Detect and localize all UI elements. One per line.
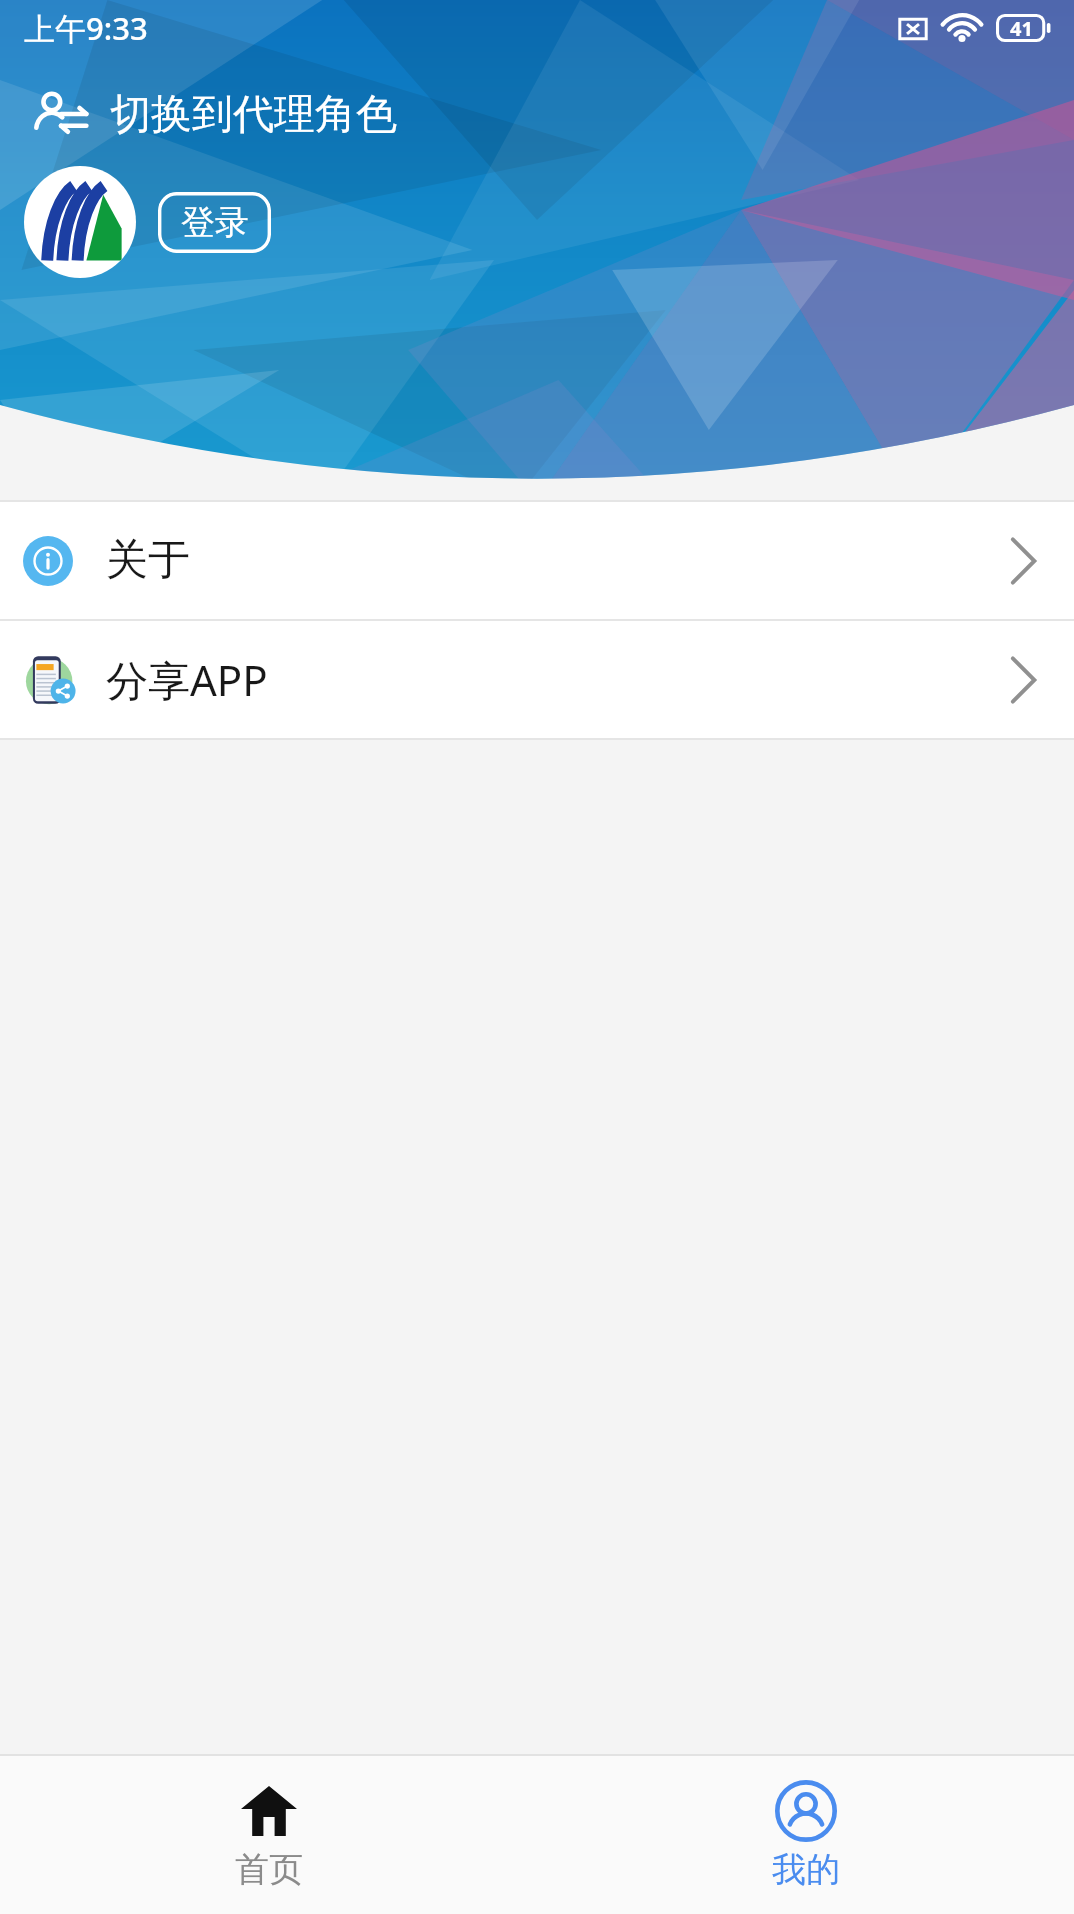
staticText: 切换到代理角色 bbox=[110, 89, 397, 141]
button[interactable]: 首页 bbox=[0, 1756, 537, 1914]
staticText: 我的 bbox=[772, 1848, 840, 1891]
button[interactable]: 我的 bbox=[537, 1756, 1074, 1914]
button[interactable]: 分享APP bbox=[0, 621, 1074, 738]
staticText: 关于 bbox=[106, 534, 190, 587]
staticText: 登录 bbox=[181, 201, 249, 244]
staticText: 分享APP bbox=[106, 651, 268, 708]
button[interactable]: User avatar bbox=[24, 166, 136, 278]
staticText: 首页 bbox=[235, 1848, 303, 1891]
staticText: 41 bbox=[1010, 15, 1033, 42]
button[interactable]: 登录 bbox=[158, 192, 271, 253]
staticText: 上午9:33 bbox=[24, 7, 148, 49]
button[interactable]: 关于 bbox=[0, 502, 1074, 619]
button[interactable]: 切换到代理角色 bbox=[0, 82, 421, 148]
